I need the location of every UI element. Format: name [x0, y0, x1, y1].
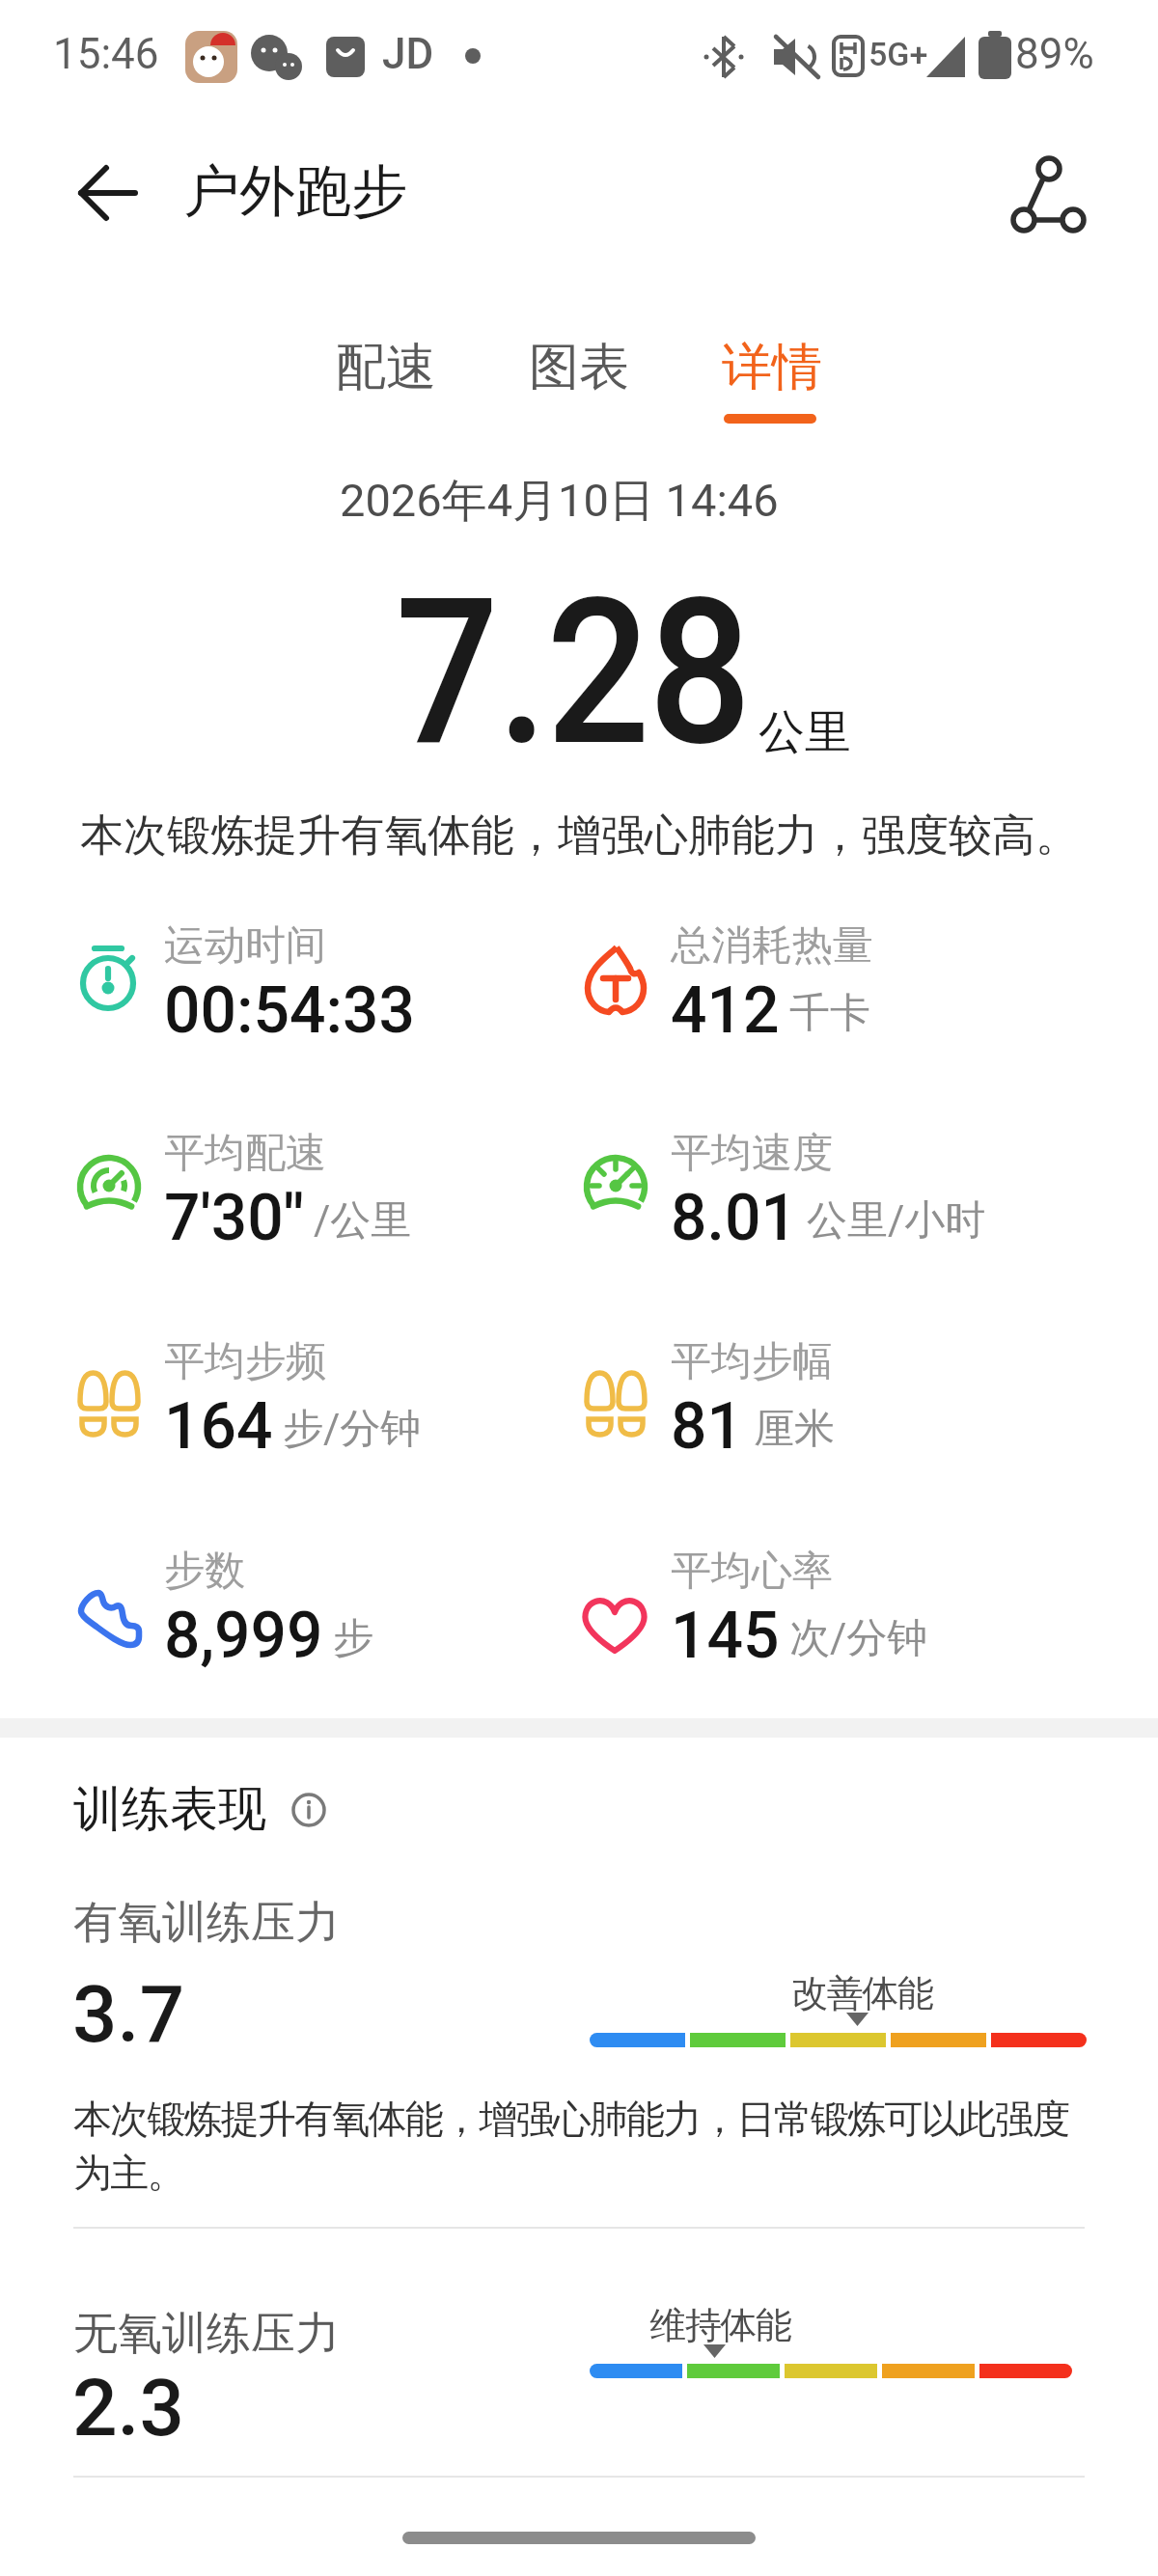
- staticText: 步数: [164, 1546, 245, 1597]
- staticText: 图表: [529, 336, 629, 399]
- staticText: 5G+: [868, 35, 928, 73]
- button[interactable]: 运动时间: [77, 920, 416, 1048]
- button[interactable]: 平均步幅: [584, 1336, 835, 1464]
- staticText: 次/分钟: [789, 1613, 928, 1664]
- button[interactable]: 平均心率: [584, 1546, 928, 1673]
- staticText: 7'30'': [164, 1181, 304, 1255]
- staticText: 步: [333, 1613, 373, 1664]
- staticText: 配速: [336, 336, 436, 399]
- staticText: 2026年4月10日 14:46: [340, 473, 779, 530]
- staticText: 有氧训练压力: [73, 1895, 340, 1951]
- staticText: 平均配速: [164, 1128, 326, 1179]
- staticText: 8.01: [671, 1181, 797, 1255]
- staticText: 户外跑步: [183, 156, 407, 227]
- staticText: 公里/小时: [807, 1195, 986, 1247]
- staticText: 平均速度: [671, 1128, 833, 1179]
- staticText: 厘米: [754, 1404, 835, 1455]
- staticText: 平均步频: [164, 1336, 326, 1387]
- staticText: 412: [671, 973, 780, 1048]
- button[interactable]: 平均配速: [77, 1128, 412, 1255]
- staticText: 公里: [758, 703, 851, 761]
- staticText: 维持体能: [650, 2302, 791, 2348]
- button[interactable]: 图表: [482, 336, 675, 399]
- button[interactable]: 详情: [675, 336, 868, 399]
- staticText: 15:46: [53, 29, 159, 79]
- staticText: 7.28: [395, 554, 750, 791]
- staticText: 本次锻炼提升有氧体能，增强心肺能力，强度较高。: [80, 808, 1079, 863]
- staticText: 运动时间: [164, 920, 326, 972]
- button[interactable]: 配速: [289, 336, 482, 399]
- staticText: 改善体能: [792, 1970, 933, 2016]
- staticText: 00:54:33: [164, 973, 416, 1048]
- staticText: 平均心率: [671, 1546, 833, 1597]
- staticText: 89%: [1015, 29, 1094, 79]
- staticText: 训练表现: [73, 1779, 266, 1840]
- staticText: 81: [671, 1389, 744, 1464]
- staticText: 164: [164, 1389, 273, 1464]
- staticText: JD: [382, 29, 434, 79]
- staticText: 无氧训练压力: [73, 2306, 340, 2362]
- staticText: 2.3: [72, 2362, 185, 2454]
- button[interactable]: 总消耗热量: [584, 920, 873, 1048]
- button[interactable]: [77, 166, 137, 220]
- button[interactable]: 平均速度: [584, 1128, 986, 1255]
- staticText: 步/分钟: [283, 1404, 422, 1455]
- button[interactable]: 训练表现: [73, 1779, 326, 1840]
- button[interactable]: 步数: [77, 1546, 373, 1673]
- button[interactable]: [1004, 152, 1087, 241]
- staticText: 本次锻炼提升有氧体能，增强心肺能力，日常锻炼可以此强度 为主。: [73, 2095, 1069, 2198]
- staticText: 总消耗热量: [671, 920, 873, 972]
- staticText: 平均步幅: [671, 1336, 833, 1387]
- staticText: 3.7: [72, 1968, 185, 2061]
- button[interactable]: 平均步频: [77, 1336, 422, 1464]
- staticText: 145: [671, 1599, 780, 1673]
- staticText: 千卡: [789, 988, 870, 1039]
- staticText: 详情: [722, 336, 822, 399]
- staticText: /公里: [314, 1195, 412, 1247]
- staticText: 8,999: [164, 1599, 323, 1673]
